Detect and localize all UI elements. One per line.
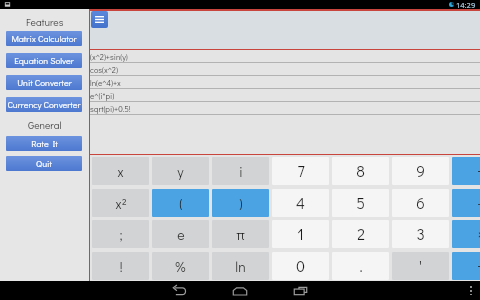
button[interactable]: More options: [466, 286, 476, 295]
button[interactable]: Rate It: [6, 136, 82, 151]
staticText: General: [28, 118, 62, 131]
staticText: .: [359, 256, 363, 276]
staticText: ln: [235, 257, 246, 275]
button[interactable]: Unit Converter: [6, 75, 82, 90]
staticText: +: [477, 161, 480, 181]
button[interactable]: ln: [212, 252, 269, 280]
staticText: !: [119, 257, 123, 275]
button[interactable]: 1: [272, 220, 329, 248]
staticText: ;: [119, 225, 123, 243]
button[interactable]: ×: [452, 220, 480, 248]
button[interactable]: 3: [392, 220, 449, 248]
button[interactable]: y: [152, 157, 209, 185]
button[interactable]: 7: [272, 157, 329, 185]
staticText: −: [477, 193, 480, 213]
staticText: sqrt(pi)+0.5!: [90, 103, 131, 114]
button[interactable]: 8: [332, 157, 389, 185]
button[interactable]: 5: [332, 189, 389, 217]
button[interactable]: sqrt(pi)+0.5!: [90, 102, 480, 114]
staticText: ': [419, 256, 422, 276]
staticText: ÷: [477, 256, 480, 276]
staticText: e^(i*pi): [90, 90, 115, 101]
button[interactable]: x: [92, 157, 149, 185]
staticText: 6: [416, 193, 425, 213]
staticText: 1: [297, 224, 304, 244]
button[interactable]: .: [332, 252, 389, 280]
staticText: 14:29: [456, 0, 476, 9]
staticText: π: [236, 225, 245, 243]
button[interactable]: i: [212, 157, 269, 185]
staticText: 7: [297, 161, 305, 181]
button[interactable]: ;: [92, 220, 149, 248]
button[interactable]: Recents: [288, 285, 312, 297]
staticText: (x^2)+sin(y): [90, 51, 128, 62]
button[interactable]: Currency Converter: [6, 97, 82, 112]
staticText: x²: [115, 194, 127, 212]
button[interactable]: Home: [228, 285, 252, 297]
button[interactable]: 9: [392, 157, 449, 185]
button[interactable]: 4: [272, 189, 329, 217]
staticText: Rate It: [31, 138, 58, 150]
staticText: 8: [356, 161, 365, 181]
button[interactable]: ': [392, 252, 449, 280]
staticText: i: [239, 162, 243, 180]
staticText: e: [177, 225, 185, 243]
button[interactable]: Equation Solver: [6, 53, 82, 68]
staticText: Unit Converter: [17, 77, 72, 89]
button[interactable]: Matrix Calculator: [6, 31, 82, 46]
button[interactable]: 6: [392, 189, 449, 217]
button[interactable]: Quit: [6, 156, 82, 171]
button[interactable]: !: [92, 252, 149, 280]
button[interactable]: +: [452, 157, 480, 185]
staticText: Equation Solver: [14, 55, 74, 67]
staticText: ×: [477, 224, 480, 244]
staticText: ): [239, 194, 243, 212]
staticText: y: [177, 162, 184, 180]
staticText: 3: [416, 224, 425, 244]
button[interactable]: e^(i*pi): [90, 89, 480, 101]
staticText: cos(x^2): [90, 64, 118, 75]
staticText: 5: [356, 193, 365, 213]
button[interactable]: e: [152, 220, 209, 248]
button[interactable]: (x^2)+sin(y): [90, 50, 480, 62]
staticText: Currency Converter: [7, 99, 81, 111]
staticText: 9: [416, 161, 425, 181]
staticText: Quit: [36, 158, 52, 170]
staticText: Features: [26, 15, 64, 28]
staticText: 4: [296, 193, 305, 213]
button[interactable]: %: [152, 252, 209, 280]
button[interactable]: x²: [92, 189, 149, 217]
button[interactable]: ln(e^4)+x: [90, 76, 480, 88]
button[interactable]: 2: [332, 220, 389, 248]
button[interactable]: ): [212, 189, 269, 217]
staticText: Matrix Calculator: [11, 33, 77, 45]
staticText: %: [175, 257, 186, 275]
button[interactable]: (: [152, 189, 209, 217]
button[interactable]: ÷: [452, 252, 480, 280]
button[interactable]: Back: [167, 285, 191, 297]
staticText: ln(e^4)+x: [90, 77, 121, 88]
button[interactable]: π: [212, 220, 269, 248]
button[interactable]: 0: [272, 252, 329, 280]
staticText: 0: [296, 256, 305, 276]
button[interactable]: Menu: [91, 11, 108, 28]
staticText: x: [117, 162, 124, 180]
button[interactable]: −: [452, 189, 480, 217]
staticText: (: [179, 194, 183, 212]
staticText: 2: [357, 224, 365, 244]
button[interactable]: cos(x^2): [90, 63, 480, 75]
